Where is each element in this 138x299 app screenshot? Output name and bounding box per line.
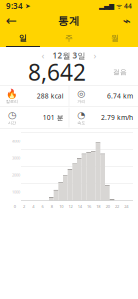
staticText: 18 xyxy=(96,204,100,209)
staticText: 통계 xyxy=(58,14,80,27)
staticText: 2000 xyxy=(12,172,20,178)
staticText: 1000 xyxy=(12,189,20,195)
button[interactable]: ◎ xyxy=(69,85,138,106)
staticText: 월 xyxy=(111,33,119,43)
button[interactable]: 일 xyxy=(0,30,46,47)
button[interactable]: ◔ xyxy=(69,107,138,128)
staticText: 10 xyxy=(59,204,63,209)
staticText: 주 xyxy=(65,33,73,43)
staticText: ⌁ xyxy=(123,13,131,28)
staticText: ← xyxy=(5,13,16,28)
button[interactable]: 월 xyxy=(92,30,138,47)
staticText: ◎ xyxy=(77,88,85,99)
staticText: ▂▄▆ xyxy=(99,2,114,10)
staticText: 걸음 xyxy=(113,68,127,76)
staticText: 4000 xyxy=(12,138,20,144)
staticText: 3000 xyxy=(12,155,20,161)
staticText: ◔ xyxy=(77,110,85,120)
button[interactable]: ◷ xyxy=(0,107,69,128)
staticText: 거리 xyxy=(77,99,85,104)
staticText: 4 xyxy=(32,204,34,209)
staticText: 44 xyxy=(122,2,132,10)
staticText: ➤ xyxy=(23,2,31,10)
staticText: ◷ xyxy=(8,110,16,120)
staticText: 12 xyxy=(68,204,72,209)
staticText: 🔥 xyxy=(6,88,18,99)
staticText: 칼로리 xyxy=(6,99,18,104)
staticText: 22 xyxy=(115,204,119,209)
button[interactable]: Previous day xyxy=(37,49,49,61)
staticText: 2 xyxy=(23,204,25,209)
staticText: 101 분 xyxy=(43,113,64,122)
staticText: 6 xyxy=(42,204,44,209)
staticText: 12월 3일 xyxy=(52,50,85,61)
staticText: 2.79 km/h xyxy=(101,113,133,122)
staticText: 속도 xyxy=(77,120,85,125)
staticText: 일 xyxy=(19,33,27,43)
staticText: 0 xyxy=(14,204,16,209)
staticText: 14 xyxy=(78,204,82,209)
button[interactable]: Share xyxy=(116,12,138,30)
staticText: 16 xyxy=(87,204,91,209)
staticText: 시간 xyxy=(8,120,16,125)
button[interactable]: Back xyxy=(0,12,22,30)
staticText: 9:34 xyxy=(6,1,23,11)
staticText: 8 xyxy=(51,204,53,209)
staticText: 6.74 km xyxy=(107,92,133,100)
button[interactable]: 🔥 xyxy=(0,85,69,106)
staticText: ‹ xyxy=(41,49,44,62)
staticText: 20 xyxy=(106,204,110,209)
staticText: ᯤ xyxy=(114,2,122,10)
staticText: 8,642 xyxy=(28,57,86,87)
button[interactable]: 주 xyxy=(46,30,92,47)
button[interactable]: Next day xyxy=(89,49,101,61)
staticText: 24 xyxy=(124,204,128,209)
staticText: 288 kcal xyxy=(37,92,64,100)
staticText: › xyxy=(93,49,96,62)
